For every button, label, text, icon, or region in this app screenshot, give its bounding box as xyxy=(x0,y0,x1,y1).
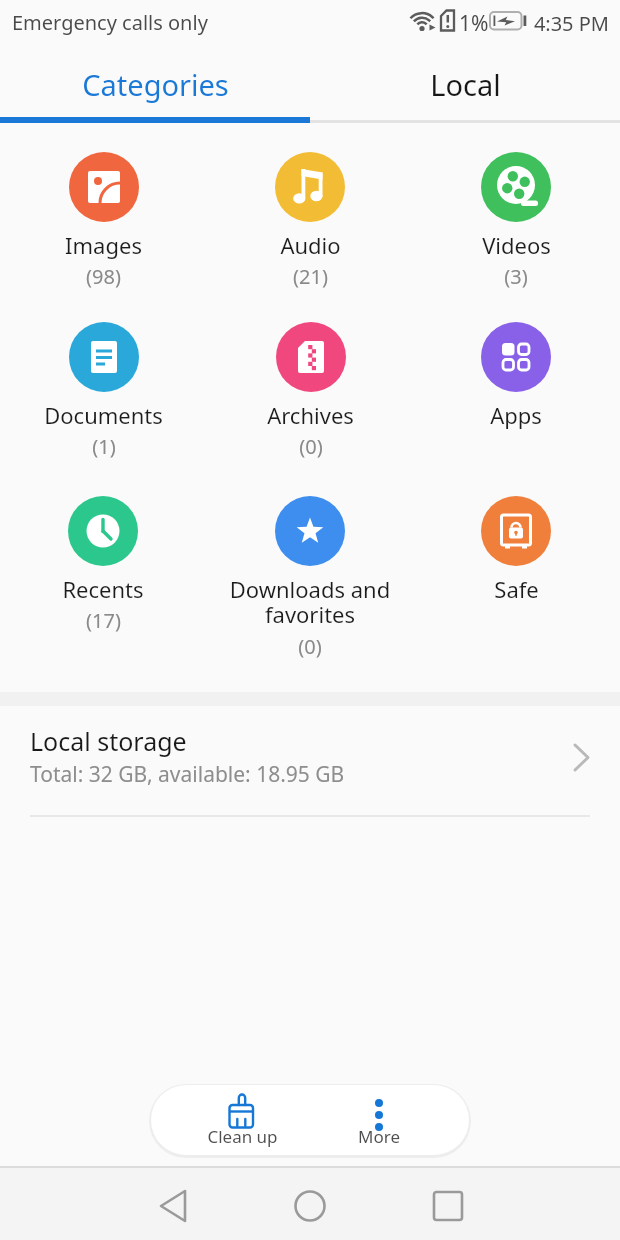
button[interactable]: Recents xyxy=(8,496,198,634)
staticText: (21) xyxy=(293,263,328,290)
button[interactable]: Safe xyxy=(421,496,611,604)
button[interactable]: Documents xyxy=(8,322,198,460)
staticText: Downloads and favorites xyxy=(215,574,405,630)
staticText: 4:35 PM xyxy=(533,10,609,37)
staticText: Categories xyxy=(82,65,229,104)
staticText: (3) xyxy=(504,263,528,290)
staticText: Clean up xyxy=(207,1125,278,1148)
staticText: Videos xyxy=(482,230,551,260)
staticText: Local xyxy=(430,65,501,104)
staticText: (1) xyxy=(92,433,116,460)
staticText: Documents xyxy=(44,400,163,430)
staticText: Total: 32 GB, available: 18.95 GB xyxy=(30,760,345,789)
button[interactable]: Categories xyxy=(0,44,310,124)
staticText: Emergency calls only xyxy=(12,9,208,36)
staticText: (17) xyxy=(86,607,121,634)
button[interactable]: Clean up xyxy=(177,1088,307,1152)
button[interactable]: Apps xyxy=(421,322,611,430)
staticText: More xyxy=(358,1125,400,1148)
button[interactable]: Videos xyxy=(421,152,611,290)
button[interactable] xyxy=(145,1178,200,1233)
staticText: Local storage xyxy=(30,724,187,758)
button[interactable] xyxy=(420,1178,475,1233)
button[interactable]: Downloads and favorites xyxy=(215,496,405,660)
staticText: (98) xyxy=(86,263,121,290)
staticText: Safe xyxy=(494,574,539,604)
button[interactable]: More xyxy=(314,1088,444,1152)
button[interactable]: Archives xyxy=(215,322,405,460)
staticText: Recents xyxy=(62,574,144,604)
staticText: Archives xyxy=(267,400,354,430)
button[interactable]: Images xyxy=(8,152,198,290)
staticText: Images xyxy=(65,230,142,260)
staticText: (0) xyxy=(298,633,322,660)
button[interactable]: Audio xyxy=(215,152,405,290)
button[interactable]: Local storage xyxy=(0,706,620,816)
button[interactable]: Local xyxy=(310,44,620,124)
staticText: Audio xyxy=(280,230,341,260)
staticText: (0) xyxy=(299,433,323,460)
staticText: Apps xyxy=(490,400,542,430)
button[interactable] xyxy=(282,1178,337,1233)
staticText: 1% xyxy=(459,9,489,38)
